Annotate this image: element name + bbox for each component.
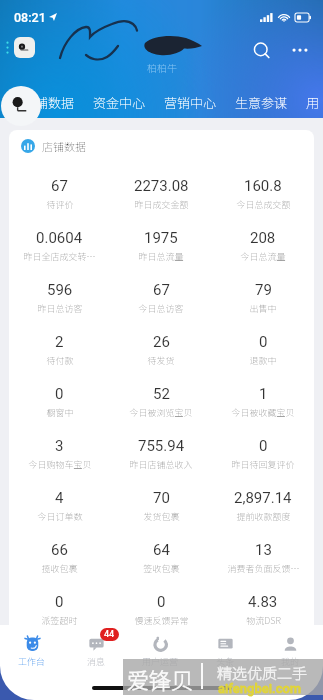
- staticText: 昨日总流量: [138, 250, 184, 263]
- staticText: 596: [47, 281, 73, 299]
- staticText: 4: [55, 489, 64, 507]
- button[interactable]: 0: [212, 429, 314, 481]
- staticText: 0: [259, 437, 268, 455]
- staticText: 3: [55, 437, 64, 455]
- staticText: 慢速反馈异常: [134, 614, 189, 625]
- button[interactable]: 2273.08: [110, 169, 212, 221]
- staticText: 2,897.14: [234, 489, 292, 507]
- staticText: 今日总成交额: [236, 198, 291, 211]
- staticText: 消息: [87, 655, 106, 667]
- staticText: 64: [153, 541, 170, 559]
- staticText: 208: [250, 229, 276, 247]
- staticText: 26: [153, 333, 170, 351]
- button[interactable]: 消息: [64, 625, 128, 667]
- staticText: 橱窗中: [46, 406, 74, 419]
- button[interactable]: 0: [212, 325, 314, 377]
- staticText: 今日购物车宝贝: [28, 458, 92, 471]
- staticText: 生意参谋: [235, 93, 288, 112]
- staticText: 签收包裹: [143, 562, 180, 575]
- button[interactable]: 0.0604: [9, 221, 110, 273]
- staticText: 工作台: [18, 655, 46, 667]
- staticText: 头条: [216, 655, 235, 667]
- staticText: 44: [104, 629, 115, 640]
- button[interactable]: More options: [283, 34, 317, 68]
- staticText: 待发货: [147, 354, 175, 367]
- staticText: 待付款: [46, 354, 74, 367]
- staticText: 0: [157, 593, 166, 611]
- button[interactable]: 用户运营: [128, 625, 193, 667]
- button[interactable]: 用: [297, 88, 323, 117]
- staticText: 70: [153, 489, 170, 507]
- button[interactable]: 64: [110, 533, 212, 585]
- staticText: 发货包裹: [143, 510, 180, 523]
- button[interactable]: Assistant: [1, 86, 41, 126]
- button[interactable]: 79: [212, 273, 314, 325]
- button[interactable]: 铺数据: [26, 88, 84, 117]
- staticText: 铺数据: [35, 93, 75, 112]
- staticText: 67: [153, 281, 170, 299]
- button[interactable]: 2,897.14: [212, 481, 314, 533]
- staticText: 昨日店铺总收入: [129, 458, 193, 471]
- button[interactable]: 0: [9, 585, 110, 625]
- staticText: 营销中心: [164, 93, 217, 112]
- staticText: 66: [51, 541, 68, 559]
- button[interactable]: 资金中心: [84, 88, 155, 117]
- button[interactable]: 我的: [258, 625, 323, 667]
- staticText: 52: [153, 385, 170, 403]
- staticText: 08:21: [14, 10, 46, 25]
- staticText: 今日总流量: [240, 250, 286, 263]
- staticText: 755.94: [138, 437, 185, 455]
- button[interactable]: 160.8: [212, 169, 314, 221]
- staticText: 物流DSR: [246, 614, 281, 625]
- button[interactable]: 4.83: [212, 585, 314, 625]
- button[interactable]: 4: [9, 481, 110, 533]
- button[interactable]: Search: [245, 34, 279, 68]
- staticText: 0: [55, 593, 64, 611]
- button[interactable]: 26: [110, 325, 212, 377]
- staticText: 用户运营: [142, 655, 179, 667]
- button[interactable]: 营销中心: [155, 88, 226, 117]
- staticText: 1975: [144, 229, 178, 247]
- staticText: 揽收包裹: [41, 562, 78, 575]
- staticText: 店铺数据: [42, 138, 86, 154]
- button[interactable]: 596: [9, 273, 110, 325]
- button[interactable]: 0: [110, 585, 212, 625]
- button[interactable]: 70: [110, 481, 212, 533]
- staticText: 资金中心: [93, 93, 146, 112]
- button[interactable]: 工作台: [0, 625, 64, 667]
- button[interactable]: 67: [9, 169, 110, 221]
- staticText: 退款中: [249, 354, 277, 367]
- button[interactable]: 3: [9, 429, 110, 481]
- button[interactable]: 头条: [193, 625, 258, 667]
- staticText: 爱锋贝: [127, 663, 194, 695]
- staticText: 67: [51, 177, 68, 195]
- button[interactable]: 1: [212, 377, 314, 429]
- button[interactable]: 52: [110, 377, 212, 429]
- staticText: 2273.08: [134, 177, 189, 195]
- staticText: 精选优质二手: [217, 662, 308, 684]
- button[interactable]: 2: [9, 325, 110, 377]
- staticText: 昨日待回复评价: [231, 458, 295, 471]
- button[interactable]: 生意参谋: [226, 88, 297, 117]
- staticText: 0.0604: [36, 229, 83, 247]
- button[interactable]: 208: [212, 221, 314, 273]
- staticText: 待评价: [46, 198, 74, 211]
- staticText: 派签超时: [41, 614, 78, 625]
- button[interactable]: 66: [9, 533, 110, 585]
- button[interactable]: Shop avatar: [14, 37, 35, 58]
- staticText: 昨日成交金额: [134, 198, 189, 211]
- staticText: 用: [306, 93, 314, 112]
- button[interactable]: 13: [212, 533, 314, 585]
- button[interactable]: 755.94: [110, 429, 212, 481]
- staticText: 79: [255, 281, 272, 299]
- staticText: aifengbei.com: [218, 681, 302, 696]
- button[interactable]: 0: [9, 377, 110, 429]
- button[interactable]: 67: [110, 273, 212, 325]
- staticText: 13: [255, 541, 272, 559]
- staticText: 今日总访客: [138, 302, 184, 315]
- staticText: 今日被浏览宝贝: [129, 406, 193, 419]
- button[interactable]: 1975: [110, 221, 212, 273]
- staticText: 0: [259, 333, 268, 351]
- staticText: 我的: [281, 655, 300, 667]
- staticText: 柏柏牛: [147, 60, 177, 74]
